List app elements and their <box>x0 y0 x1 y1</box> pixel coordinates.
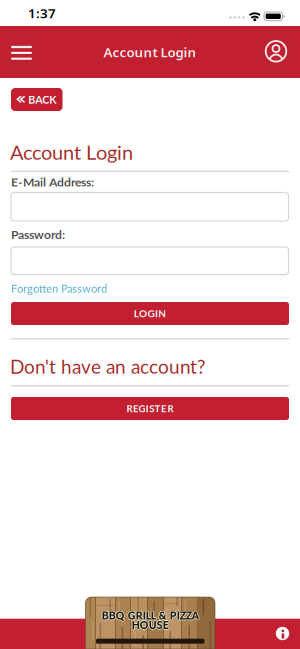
staticText: BACK <box>28 93 56 106</box>
button[interactable]: Account <box>258 33 294 69</box>
button[interactable]: BACK <box>11 88 62 111</box>
staticText: BBQ GRILL & PIZZA <box>102 609 199 622</box>
button[interactable]: REGISTER <box>11 397 289 420</box>
button[interactable]: Forgotten Password <box>11 282 107 295</box>
staticText: HOUSE <box>132 618 169 630</box>
staticText: HOUSE <box>131 618 168 631</box>
staticText: BBQ GRILL & PIZZA <box>102 608 199 621</box>
staticText: Don't have an account? <box>10 355 206 378</box>
staticText: Password: <box>11 227 65 242</box>
staticText: 1:37 <box>28 4 56 22</box>
staticText: E-Mail Address: <box>11 174 94 189</box>
staticText: HOUSE <box>133 618 170 631</box>
staticText: REGISTER <box>127 403 173 414</box>
staticText: Account Login <box>10 140 133 164</box>
staticText: Account Login <box>103 43 196 61</box>
staticText: LOGIN <box>134 307 166 319</box>
staticText: BBQ GRILL & PIZZA <box>102 609 199 622</box>
staticText: BBQ GRILL & PIZZA <box>101 609 198 622</box>
staticText: HOUSE <box>132 619 169 632</box>
staticText: HOUSE <box>132 618 169 631</box>
button[interactable]: Info <box>274 625 291 642</box>
button[interactable]: Menu <box>3 33 40 71</box>
staticText: BBQ GRILL & PIZZA <box>102 610 199 622</box>
staticText: Forgotten Password <box>11 282 107 295</box>
button[interactable]: LOGIN <box>11 302 289 325</box>
